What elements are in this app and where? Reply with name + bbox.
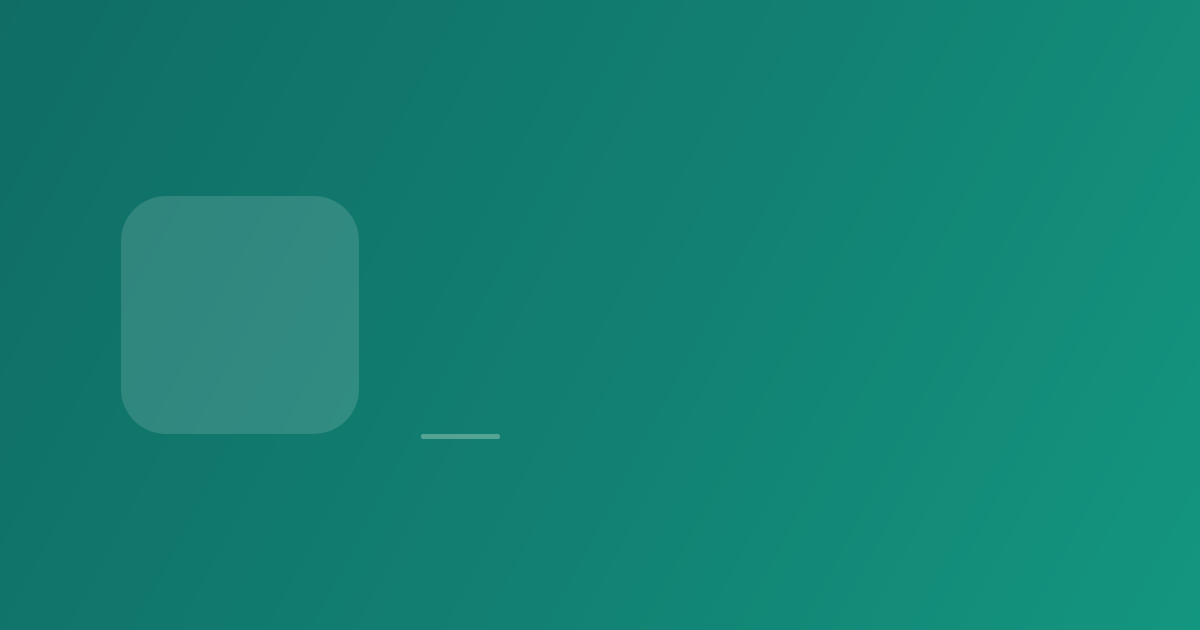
button[interactable]: Artwork [121, 196, 359, 434]
